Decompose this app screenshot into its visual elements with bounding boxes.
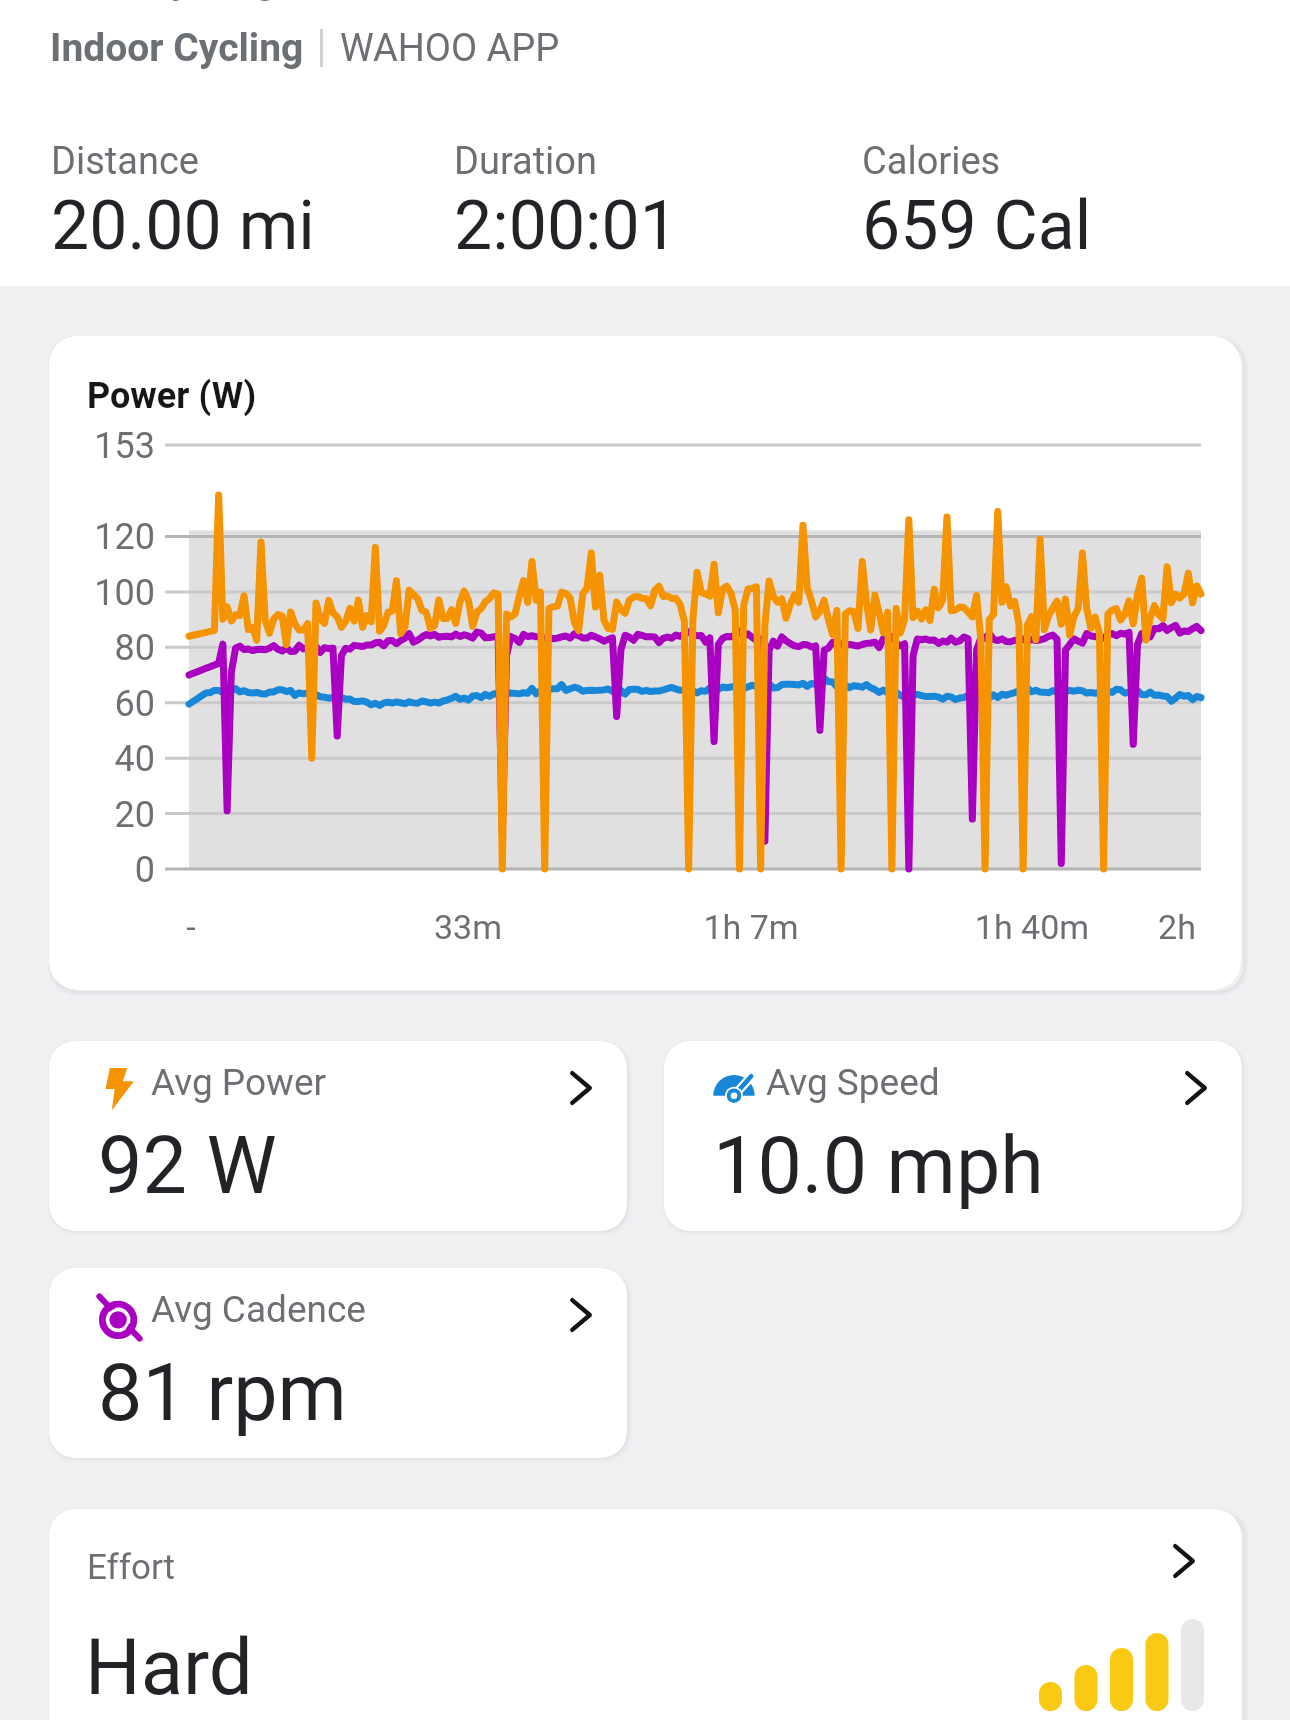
staticText: 120 bbox=[49, 516, 155, 558]
staticText: 10.0 mph bbox=[713, 1120, 1044, 1213]
staticText: 92 W bbox=[98, 1120, 277, 1213]
staticText: 2:00:01 bbox=[454, 186, 679, 266]
staticText: Power (W) bbox=[87, 375, 257, 417]
button[interactable]: Avg Speed bbox=[664, 1041, 1242, 1231]
staticText: WAHOO APP bbox=[340, 26, 560, 71]
staticText: 0 bbox=[49, 849, 155, 891]
staticText: 81 rpm bbox=[98, 1347, 347, 1440]
button[interactable]: Avg Cadence details bbox=[571, 1298, 591, 1332]
button[interactable]: Avg Cadence bbox=[49, 1268, 627, 1458]
button[interactable]: Avg Power bbox=[49, 1041, 627, 1231]
staticText: Avg Speed bbox=[766, 1061, 940, 1104]
button[interactable]: Avg Power details bbox=[571, 1071, 591, 1105]
staticText: Indoor Cycling bbox=[50, 25, 304, 71]
staticText: Duration bbox=[454, 139, 598, 184]
staticText: Calories bbox=[862, 139, 1001, 184]
button[interactable]: Effort bbox=[49, 1509, 1241, 1720]
staticText: Monday, August 25 bbox=[50, 0, 387, 3]
staticText: 60 bbox=[49, 683, 155, 725]
staticText: 2h bbox=[1047, 907, 1241, 947]
staticText: 80 bbox=[49, 627, 155, 669]
button[interactable]: Power (W) bbox=[49, 336, 1241, 990]
staticText: Avg Power bbox=[151, 1061, 327, 1104]
staticText: Effort bbox=[87, 1547, 176, 1588]
button[interactable]: Avg Speed details bbox=[1186, 1071, 1206, 1105]
staticText: 20.00 mi bbox=[51, 186, 315, 266]
staticText: 1h 40m bbox=[902, 907, 1162, 947]
staticText: 1h 7m bbox=[621, 907, 881, 947]
staticText: 20 bbox=[49, 794, 155, 836]
staticText: Distance bbox=[51, 139, 199, 184]
staticText: - bbox=[61, 907, 321, 947]
staticText: 100 bbox=[49, 572, 155, 614]
staticText: 153 bbox=[49, 425, 155, 467]
staticText: 659 Cal bbox=[862, 186, 1092, 266]
staticText: Avg Cadence bbox=[151, 1288, 366, 1331]
staticText: Hard bbox=[85, 1622, 253, 1713]
staticText: 33m bbox=[338, 907, 598, 947]
staticText: 40 bbox=[49, 738, 155, 780]
button[interactable]: Effort details bbox=[1174, 1544, 1194, 1578]
